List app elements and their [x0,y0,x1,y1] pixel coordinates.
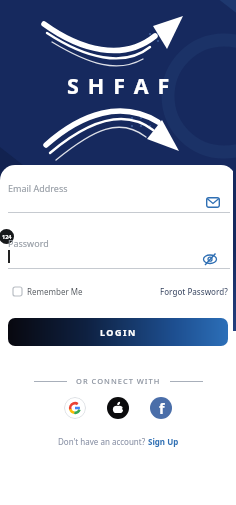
button[interactable]: f [150,397,172,419]
staticText: LOGIN [100,326,137,338]
staticText: Email Address [8,182,68,194]
staticText: Remember Me [27,286,83,297]
button[interactable]: LOGIN [8,318,228,346]
staticText: Password [8,237,49,249]
button[interactable]: Forgot Password? [160,286,228,297]
button[interactable] [107,397,129,419]
staticText: Don't have an account? [58,436,148,447]
staticText: f [159,399,165,418]
button[interactable] [64,397,86,419]
button[interactable]: Remember Me [13,286,83,297]
button[interactable]: Email Address [0,177,236,215]
button[interactable]: Password [0,237,236,275]
staticText: 124 [2,233,12,240]
button[interactable]: Sign Up [148,436,179,447]
staticText: OR CONNECT WITH [76,376,161,386]
staticText: SHFAF [67,71,179,100]
